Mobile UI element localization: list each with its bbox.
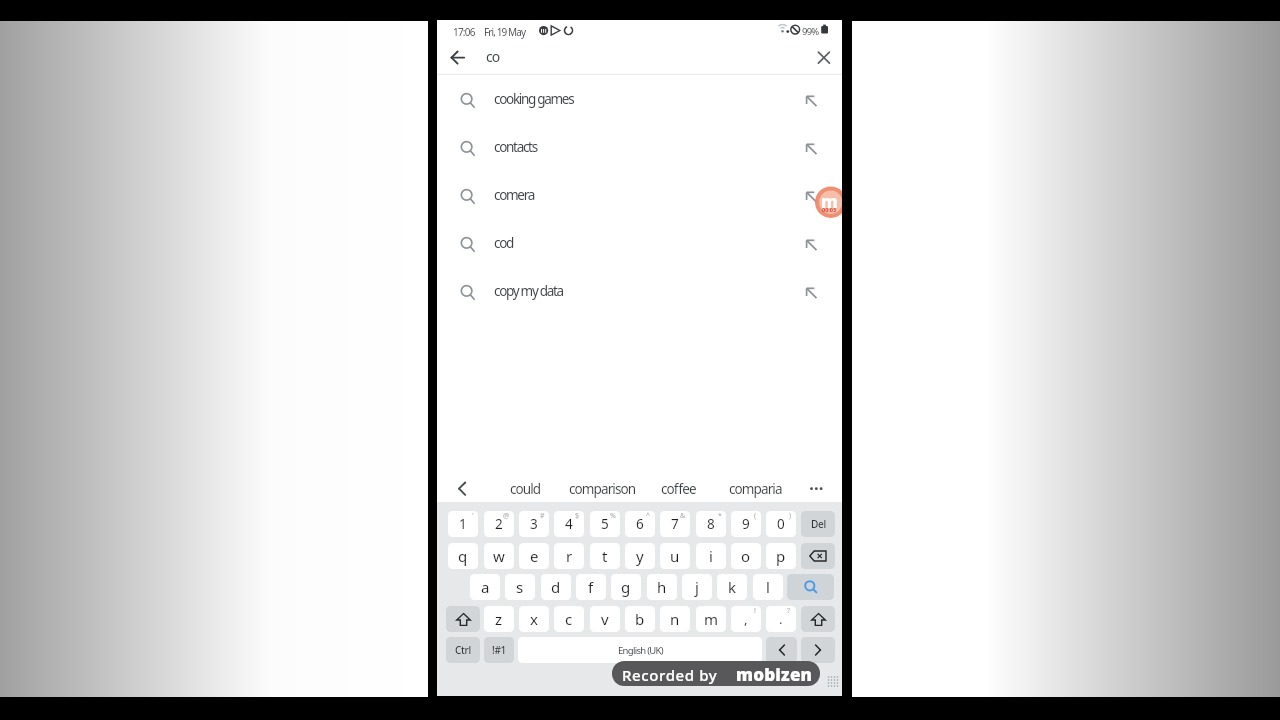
staticText: * — [718, 511, 722, 521]
button[interactable]: f — [576, 574, 606, 600]
button[interactable]: 5 — [590, 511, 620, 537]
button[interactable] — [443, 43, 473, 73]
staticText: # — [540, 511, 545, 521]
staticText: g — [621, 577, 631, 597]
button[interactable]: u — [660, 543, 690, 569]
button[interactable]: k — [717, 574, 747, 600]
staticText: 4 — [565, 515, 573, 533]
button[interactable]: o — [731, 543, 761, 569]
button[interactable]: coffee — [633, 476, 723, 502]
staticText: cod — [494, 234, 514, 252]
staticText: 5 — [601, 515, 609, 533]
staticText: ^ — [646, 511, 651, 521]
staticText: l — [766, 577, 770, 597]
button[interactable]: 6 — [625, 511, 655, 537]
button[interactable]: 3 — [519, 511, 549, 537]
button[interactable] — [801, 606, 835, 632]
staticText: c — [565, 609, 573, 629]
button[interactable]: comparia — [710, 476, 800, 502]
staticText: k — [728, 577, 737, 597]
button[interactable]: g — [611, 574, 641, 600]
button[interactable]: m — [696, 606, 726, 632]
staticText: Del — [811, 517, 826, 531]
button[interactable]: l — [753, 574, 783, 600]
staticText: b — [635, 609, 645, 629]
button[interactable] — [801, 543, 835, 569]
staticText: j — [695, 577, 699, 597]
staticText: cooking games — [494, 90, 574, 108]
staticText: Recorded by — [622, 665, 718, 685]
button[interactable]: comparison — [557, 476, 647, 502]
button[interactable]: z — [484, 606, 514, 632]
staticText: x — [530, 609, 538, 629]
button[interactable]: i — [696, 543, 726, 569]
button[interactable]: n — [660, 606, 690, 632]
button[interactable]: Del — [801, 511, 835, 537]
button[interactable]: q — [448, 543, 478, 569]
button[interactable]: p — [766, 543, 796, 569]
button[interactable]: j — [682, 574, 712, 600]
button[interactable]: e — [519, 543, 549, 569]
staticText: e — [530, 546, 539, 566]
staticText: i — [709, 546, 713, 566]
button[interactable]: s — [505, 574, 535, 600]
staticText: ' — [472, 511, 474, 521]
button[interactable] — [446, 606, 480, 632]
staticText: f — [588, 577, 594, 597]
button[interactable]: r — [554, 543, 584, 569]
button[interactable]: , — [731, 606, 761, 632]
staticText: z — [495, 609, 503, 629]
staticText: $ — [575, 511, 580, 521]
button[interactable]: 9 — [731, 511, 761, 537]
button[interactable]: could — [480, 476, 570, 502]
button[interactable]: cooking games — [437, 77, 842, 125]
staticText: n — [670, 609, 680, 629]
button[interactable]: 2 — [484, 511, 514, 537]
button[interactable]: b — [625, 606, 655, 632]
button[interactable] — [766, 637, 797, 663]
staticText: o — [741, 546, 751, 566]
staticText: ) — [789, 511, 792, 521]
staticText: h — [657, 577, 667, 597]
button[interactable]: cod — [437, 221, 842, 269]
button[interactable]: 0 — [766, 511, 796, 537]
button[interactable]: y — [625, 543, 655, 569]
button[interactable]: h — [647, 574, 677, 600]
staticText: 7 — [671, 515, 679, 533]
staticText: p — [776, 546, 786, 566]
button[interactable]: contacts — [437, 125, 842, 173]
button[interactable]: 7 — [660, 511, 690, 537]
button[interactable] — [808, 43, 838, 73]
staticText: a — [481, 577, 490, 597]
button[interactable]: x — [519, 606, 549, 632]
button[interactable]: w — [484, 543, 514, 569]
staticText: s — [516, 577, 524, 597]
button[interactable]: a — [470, 574, 500, 600]
button[interactable]: v — [590, 606, 620, 632]
button[interactable]: . — [766, 606, 796, 632]
button[interactable] — [801, 637, 835, 663]
staticText: @ — [503, 511, 510, 521]
staticText: u — [670, 546, 680, 566]
button[interactable] — [787, 574, 834, 600]
button[interactable]: t — [590, 543, 620, 569]
staticText: w — [493, 546, 505, 566]
staticText: coffee — [661, 480, 696, 498]
staticText: r — [566, 546, 573, 566]
button[interactable]: copy my data — [437, 269, 842, 317]
button[interactable]: !#1 — [484, 637, 514, 663]
button[interactable]: 1 — [448, 511, 478, 537]
staticText: Fri, 19 May — [484, 25, 526, 39]
button[interactable]: English (UK) — [518, 637, 762, 663]
button[interactable]: c — [554, 606, 584, 632]
button[interactable]: comera — [437, 173, 842, 221]
staticText: y — [636, 546, 644, 566]
staticText: copy my data — [494, 282, 563, 300]
button[interactable]: Recorded by — [612, 661, 820, 686]
staticText: 3 — [530, 515, 538, 533]
button[interactable]: Ctrl — [446, 637, 480, 663]
staticText: mobizen — [736, 663, 813, 686]
button[interactable]: 8 — [696, 511, 726, 537]
button[interactable]: d — [541, 574, 571, 600]
button[interactable]: 4 — [554, 511, 584, 537]
